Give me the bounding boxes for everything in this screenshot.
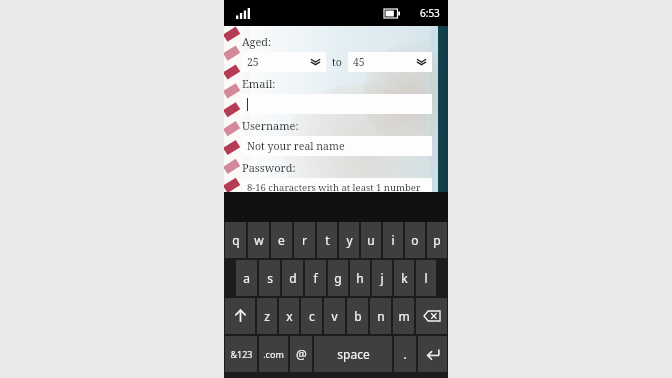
staticText: 8-16 characters with at least 1 number xyxy=(247,181,421,194)
button[interactable]: t xyxy=(317,222,337,258)
staticText: n xyxy=(377,308,385,324)
staticText: w xyxy=(254,232,264,248)
button[interactable]: f xyxy=(305,260,326,296)
staticText: d xyxy=(289,270,297,286)
button[interactable]: r xyxy=(294,222,315,258)
staticText: Password: xyxy=(242,160,296,175)
staticText: space xyxy=(337,346,370,362)
button[interactable]: h xyxy=(350,260,370,296)
button[interactable]: Backspace xyxy=(416,298,447,334)
staticText: m xyxy=(398,308,410,324)
staticText: l xyxy=(424,270,428,286)
button[interactable]: d xyxy=(282,260,303,296)
staticText: 45 xyxy=(353,55,365,69)
staticText: o xyxy=(411,232,419,248)
staticText: Email: xyxy=(242,76,276,91)
button[interactable]: s xyxy=(259,260,280,296)
staticText: h xyxy=(356,270,364,286)
staticText: @ xyxy=(296,346,307,362)
staticText: j xyxy=(380,270,384,286)
staticText: v xyxy=(331,308,338,324)
button[interactable]: a xyxy=(236,260,257,296)
button[interactable]: b xyxy=(347,298,368,334)
staticText: a xyxy=(243,270,250,286)
button[interactable]: q xyxy=(225,222,246,258)
staticText: . xyxy=(403,346,407,362)
button[interactable]: 8-16 characters with at least 1 number xyxy=(242,178,432,196)
button[interactable]: Shift xyxy=(225,298,255,334)
staticText: q xyxy=(232,232,240,248)
button[interactable]: Not your real name xyxy=(242,136,432,156)
staticText: Not your real name xyxy=(247,139,345,153)
button[interactable]: Enter xyxy=(418,336,447,372)
staticText: f xyxy=(313,270,318,286)
staticText: y xyxy=(346,232,353,248)
staticText: s xyxy=(267,270,273,286)
staticText: Aged: xyxy=(242,34,272,49)
button[interactable]: .com xyxy=(259,336,288,372)
button[interactable]: o xyxy=(405,222,425,258)
button[interactable]: m xyxy=(393,298,414,334)
button[interactable]: w xyxy=(248,222,269,258)
button[interactable]: y xyxy=(339,222,359,258)
button[interactable]: x xyxy=(279,298,299,334)
staticText: x xyxy=(286,308,293,324)
button[interactable]: @ xyxy=(290,336,312,372)
staticText: c xyxy=(309,308,315,324)
button[interactable]: l xyxy=(416,260,436,296)
button[interactable]: v xyxy=(324,298,345,334)
staticText: b xyxy=(354,308,362,324)
button[interactable]: u xyxy=(361,222,381,258)
staticText: Username: xyxy=(242,118,299,133)
button[interactable]: j xyxy=(372,260,392,296)
button[interactable]: n xyxy=(370,298,391,334)
staticText: to xyxy=(332,55,342,69)
staticText: &123 xyxy=(230,348,253,360)
button[interactable]: space xyxy=(314,336,392,372)
button[interactable]: k xyxy=(394,260,414,296)
other: Open dropdown xyxy=(310,58,321,67)
other: Open dropdown xyxy=(416,58,427,67)
button[interactable]: c xyxy=(301,298,322,334)
staticText: k xyxy=(401,270,408,286)
staticText: t xyxy=(325,232,330,248)
staticText: g xyxy=(334,270,342,286)
staticText: p xyxy=(433,232,441,248)
button[interactable]: z xyxy=(257,298,277,334)
staticText: r xyxy=(302,232,307,248)
button[interactable]: i xyxy=(383,222,403,258)
staticText: u xyxy=(367,232,375,248)
button[interactable]: e xyxy=(271,222,292,258)
button[interactable] xyxy=(242,94,432,114)
button[interactable]: g xyxy=(328,260,348,296)
button[interactable]: . xyxy=(394,336,416,372)
staticText: 25 xyxy=(247,55,259,69)
button[interactable]: &123 xyxy=(225,336,257,372)
staticText: z xyxy=(264,308,270,324)
button[interactable]: 45 xyxy=(348,52,432,72)
staticText: i xyxy=(391,232,395,248)
button[interactable]: p xyxy=(427,222,447,258)
staticText: .com xyxy=(263,348,284,360)
staticText: e xyxy=(278,232,285,248)
button[interactable]: 25 xyxy=(242,52,326,72)
staticText: 6:53 xyxy=(420,6,440,20)
